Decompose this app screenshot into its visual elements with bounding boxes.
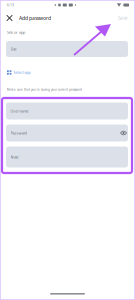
staticText: Site or app [7,29,25,35]
button[interactable]: Save [114,12,131,24]
button[interactable]: Site [6,41,128,57]
staticText: Note [10,154,18,160]
button[interactable]: Note [6,146,128,167]
staticText: Username [10,108,28,114]
staticText: 6:13 [7,3,14,7]
staticText: Add password [19,14,51,21]
staticText: Site [10,46,16,52]
staticText: Make sure that you're saving your curren… [7,87,82,91]
staticText: Save [118,15,128,21]
staticText: Password [10,130,26,136]
button[interactable]: Username [6,102,128,119]
staticText: Select app [14,70,31,75]
button[interactable]: Password [6,124,128,141]
button[interactable]: Select app [0,67,135,78]
button[interactable]: Close [3,11,16,24]
